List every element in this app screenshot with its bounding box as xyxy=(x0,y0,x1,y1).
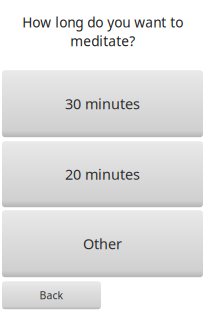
staticText: 30 minutes xyxy=(65,94,140,113)
button[interactable]: 30 minutes xyxy=(2,70,203,137)
button[interactable]: 20 minutes xyxy=(2,141,203,207)
staticText: Other xyxy=(83,234,122,253)
staticText: 20 minutes xyxy=(65,164,140,184)
button[interactable]: Other xyxy=(2,210,203,277)
button[interactable]: Back xyxy=(2,281,101,309)
staticText: How long do you want to meditate? xyxy=(22,13,183,50)
staticText: Back xyxy=(39,288,63,302)
